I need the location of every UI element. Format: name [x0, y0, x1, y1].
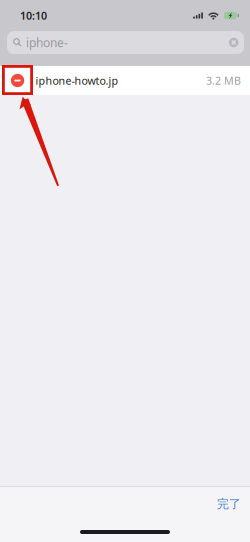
- staticText: iphone-howto.jp: [36, 73, 119, 88]
- button[interactable]: Delete iphone-howto.jp: [0, 66, 36, 95]
- button[interactable]: 完了: [205, 487, 250, 516]
- staticText: 10:10: [20, 8, 47, 23]
- button[interactable]: Clear search text: [229, 32, 244, 53]
- staticText: 完了: [217, 497, 241, 511]
- staticText: iphone-: [26, 34, 68, 50]
- staticText: 3.2 MB: [206, 73, 241, 88]
